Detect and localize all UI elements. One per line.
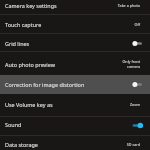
- button[interactable]: Correction for image distortion: [0, 75, 150, 94]
- staticText: SD card: [126, 142, 140, 147]
- staticText: Grid lines: [5, 40, 30, 47]
- button[interactable]: Touch capture: [0, 15, 150, 33]
- button[interactable]: Correction for image distortion: [132, 79, 143, 90]
- staticText: Sound: [5, 121, 22, 128]
- staticText: Only front camera: [122, 59, 140, 69]
- button[interactable]: Grid lines: [0, 34, 150, 51]
- button[interactable]: Use Volume key as: [0, 94, 150, 116]
- staticText: Off: [134, 22, 140, 27]
- staticText: Zoom: [129, 102, 140, 107]
- button[interactable]: Data storage: [0, 136, 150, 150]
- staticText: Take a photo: [117, 3, 140, 8]
- button[interactable]: Camera key settings: [0, 0, 150, 14]
- staticText: Data storage: [5, 141, 38, 148]
- button[interactable]: Grid lines: [132, 38, 143, 49]
- staticText: Auto photo preview: [5, 61, 55, 68]
- button[interactable]: Auto photo preview: [0, 52, 150, 75]
- staticText: Correction for image distortion: [5, 81, 85, 88]
- staticText: Use Volume key as: [5, 101, 53, 108]
- staticText: Touch capture: [5, 21, 42, 28]
- staticText: Camera key settings: [5, 2, 57, 9]
- button[interactable]: Sound: [0, 117, 150, 135]
- button[interactable]: Sound: [132, 120, 143, 131]
